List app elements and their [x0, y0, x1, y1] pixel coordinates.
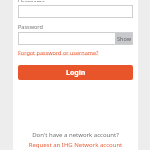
staticText: Don't have a network account? [18, 131, 133, 139]
button[interactable]: Forgot password or username? [18, 49, 99, 56]
button[interactable]: Request an IHG Network account [18, 141, 133, 149]
button[interactable]: Login [18, 65, 133, 80]
button[interactable] [18, 32, 115, 45]
staticText: Request an IHG Network account [18, 141, 133, 149]
staticText: Forgot password or username? [18, 49, 99, 56]
staticText: Login [66, 68, 86, 78]
staticText: Password [18, 23, 43, 30]
button[interactable] [18, 5, 133, 18]
button[interactable]: Show [115, 32, 133, 45]
staticText: Show [117, 35, 131, 42]
staticText: Username [18, 0, 45, 2]
